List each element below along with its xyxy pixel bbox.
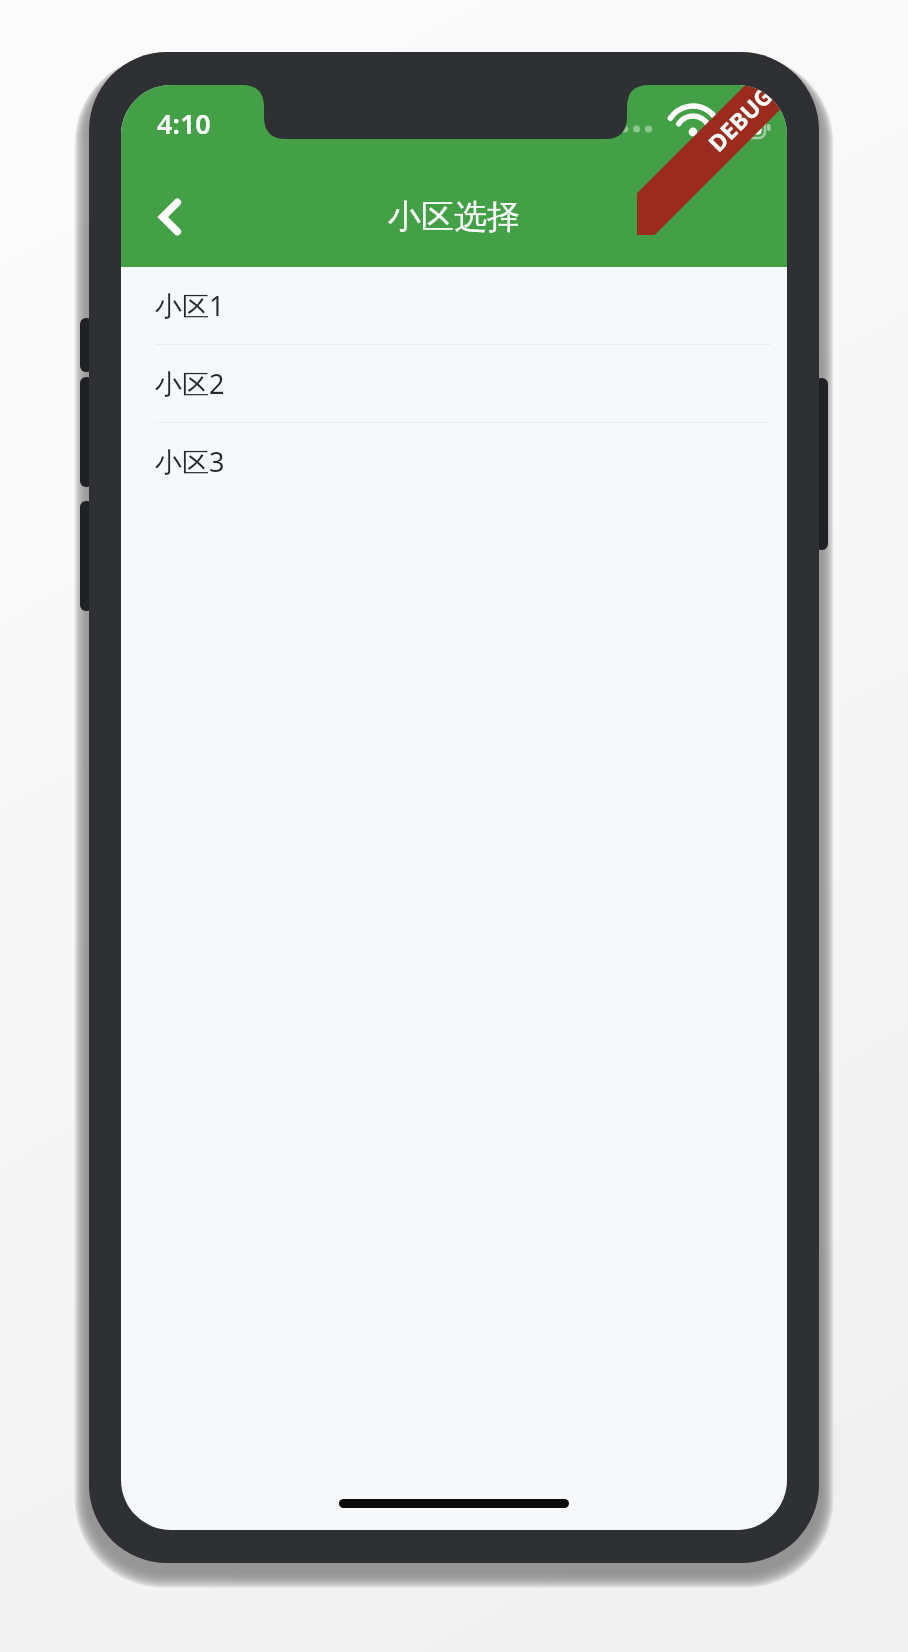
staticText: 小区2 bbox=[155, 365, 225, 402]
staticText: DEBUG bbox=[701, 85, 779, 158]
staticText: 4:10 bbox=[157, 105, 211, 142]
button[interactable]: 小区1 bbox=[121, 267, 787, 345]
staticText: 小区选择 bbox=[388, 196, 520, 238]
button[interactable]: Back bbox=[133, 180, 207, 254]
staticText: 小区3 bbox=[155, 443, 225, 480]
button[interactable]: 小区3 bbox=[121, 423, 787, 500]
staticText: 小区1 bbox=[155, 287, 225, 324]
button[interactable]: 小区2 bbox=[121, 345, 787, 423]
